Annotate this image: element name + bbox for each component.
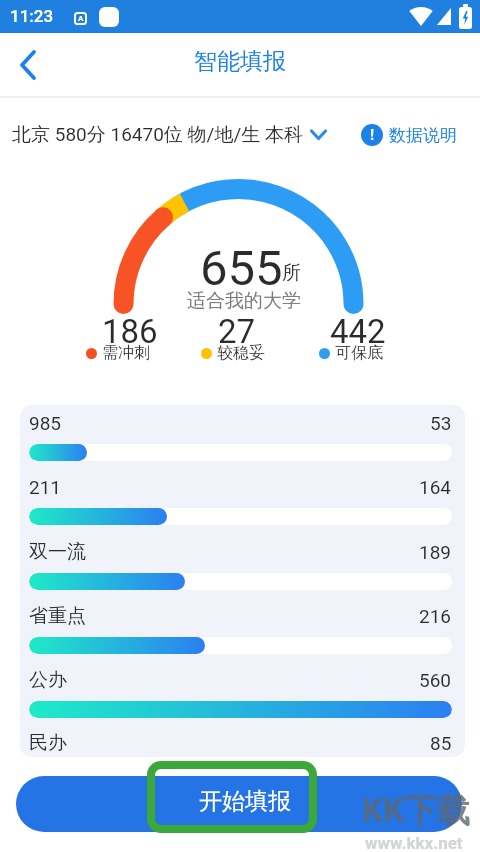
staticText: 655	[200, 240, 283, 297]
staticText: 北京 580分 16470位 物/地/生 本科	[12, 123, 303, 147]
staticText: 需冲刺	[102, 343, 150, 363]
staticText: A	[78, 14, 84, 23]
staticText: 85	[430, 732, 452, 754]
staticText: 民办	[29, 731, 67, 755]
staticText: 985	[29, 412, 62, 434]
staticText: !	[370, 126, 375, 144]
staticText: 双一流	[29, 540, 86, 564]
staticText: 164	[419, 476, 452, 498]
button[interactable]: 北京 580分 16470位 物/地/生 本科	[12, 123, 327, 147]
staticText: 开始填报	[199, 787, 291, 816]
staticText: 442	[330, 312, 386, 351]
staticText: 较稳妥	[217, 343, 265, 363]
staticText: 省重点	[29, 604, 86, 628]
staticText: 189	[419, 541, 452, 563]
staticText: KK下载	[362, 790, 470, 832]
button[interactable]: 开始填报	[16, 776, 462, 832]
staticText: 53	[430, 412, 452, 434]
staticText: 560	[419, 669, 452, 691]
button[interactable]: !	[361, 124, 457, 146]
staticText: 211	[29, 476, 62, 498]
staticText: 可保底	[335, 343, 383, 363]
staticText: 公办	[29, 668, 67, 692]
staticText: 所	[282, 261, 301, 285]
staticText: 216	[419, 605, 452, 627]
staticText: 11:23	[10, 6, 54, 26]
staticText: www.kkx.net	[365, 833, 463, 852]
staticText: 186	[102, 312, 158, 351]
staticText: 数据说明	[389, 125, 457, 146]
staticText: 智能填报	[194, 47, 286, 76]
staticText: 适合我的大学	[187, 289, 301, 313]
staticText: 27	[218, 312, 256, 351]
button[interactable]	[20, 50, 36, 80]
